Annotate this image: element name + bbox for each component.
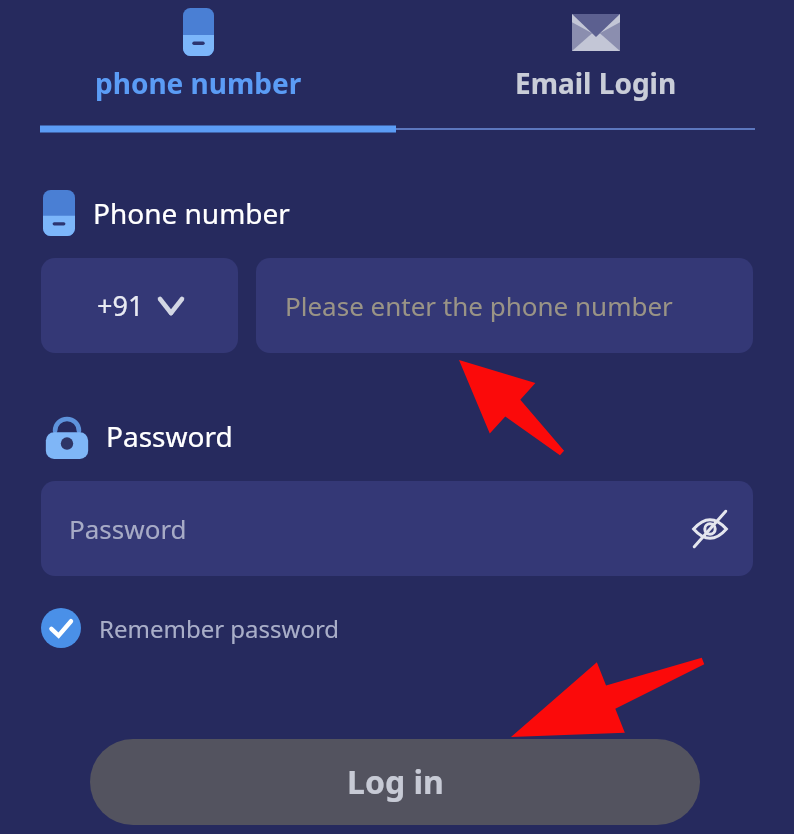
button[interactable]: +91: [41, 258, 238, 353]
button[interactable]: Password: [41, 481, 753, 576]
staticText: Phone number: [93, 194, 290, 232]
staticText: phone number: [95, 64, 302, 102]
staticText: Password: [106, 417, 233, 455]
staticText: Remember password: [99, 612, 340, 645]
button[interactable]: Email Login: [397, 0, 794, 126]
button[interactable]: Please enter the phone number: [256, 258, 753, 353]
button[interactable]: Show password: [683, 502, 737, 556]
staticText: Please enter the phone number: [285, 288, 673, 323]
button[interactable]: phone number: [0, 0, 397, 126]
staticText: Log in: [347, 760, 444, 804]
staticText: +91: [97, 287, 144, 324]
button[interactable]: Log in: [90, 739, 700, 825]
staticText: Email Login: [515, 64, 677, 102]
button[interactable]: Remember password: [41, 608, 340, 648]
staticText: Password: [69, 511, 187, 546]
